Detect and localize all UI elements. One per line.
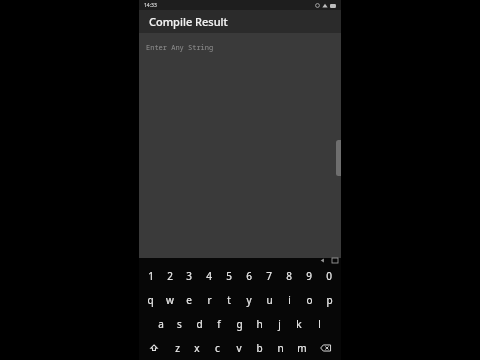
staticText: t [227, 293, 231, 307]
button[interactable]: 0 [319, 263, 339, 288]
staticText: g [236, 317, 243, 331]
staticText: 14:33 [144, 2, 157, 9]
button[interactable]: 3 [179, 263, 199, 288]
button[interactable]: j [269, 312, 289, 336]
button[interactable]: h [249, 312, 269, 336]
button[interactable]: r [199, 288, 219, 312]
button[interactable]: f [209, 312, 229, 336]
staticText: y [246, 293, 252, 307]
button[interactable]: 8 [279, 263, 299, 288]
button[interactable]: s [170, 312, 189, 336]
button[interactable]: g [229, 312, 249, 336]
staticText: 9 [306, 269, 312, 283]
staticText: 7 [266, 269, 272, 283]
button[interactable]: i [279, 288, 299, 312]
button[interactable]: 1 [141, 263, 160, 288]
button[interactable]: k [289, 312, 309, 336]
button[interactable]: c [207, 336, 228, 360]
button[interactable]: e [179, 288, 199, 312]
staticText: z [175, 341, 180, 355]
staticText: p [326, 293, 333, 307]
staticText: 8 [286, 269, 292, 283]
button[interactable]: m [291, 336, 312, 360]
staticText: w [166, 293, 174, 307]
button[interactable]: t [219, 288, 239, 312]
button[interactable]: 6 [239, 263, 259, 288]
staticText: o [306, 293, 313, 307]
button[interactable]: n [270, 336, 291, 360]
staticText: l [318, 317, 321, 331]
button[interactable]: w [160, 288, 179, 312]
staticText: b [256, 341, 263, 355]
staticText: 2 [167, 269, 173, 283]
staticText: s [177, 317, 182, 331]
button[interactable]: q [141, 288, 160, 312]
staticText: r [207, 293, 212, 307]
staticText: n [277, 341, 284, 355]
staticText: 0 [326, 269, 332, 283]
staticText: 3 [186, 269, 192, 283]
button[interactable]: 7 [259, 263, 279, 288]
staticText: h [256, 317, 263, 331]
staticText: j [278, 317, 281, 331]
button[interactable]: p [319, 288, 339, 312]
staticText: 4 [206, 269, 212, 283]
button[interactable]: v [228, 336, 249, 360]
staticText: v [236, 341, 242, 355]
button[interactable]: d [189, 312, 209, 336]
staticText: 5 [226, 269, 232, 283]
button[interactable]: Compile Result [139, 10, 341, 33]
button[interactable]: Backspace [312, 336, 339, 360]
staticText: k [296, 317, 302, 331]
staticText: d [196, 317, 203, 331]
button[interactable]: Shift [141, 336, 167, 360]
staticText: f [217, 317, 221, 331]
button[interactable]: z [167, 336, 187, 360]
button[interactable]: l [309, 312, 329, 336]
button[interactable]: b [249, 336, 270, 360]
button[interactable]: Undo [320, 258, 327, 263]
button[interactable]: 2 [160, 263, 179, 288]
staticText: m [297, 341, 307, 355]
staticText: e [186, 293, 192, 307]
button[interactable]: 4 [199, 263, 219, 288]
button[interactable]: 5 [219, 263, 239, 288]
staticText: u [266, 293, 273, 307]
staticText: i [288, 293, 291, 307]
button[interactable]: 9 [299, 263, 319, 288]
staticText: 1 [148, 269, 154, 283]
staticText: c [215, 341, 220, 355]
staticText: Compile Result [149, 14, 228, 29]
staticText: q [147, 293, 154, 307]
button[interactable]: u [259, 288, 279, 312]
button[interactable]: x [187, 336, 207, 360]
staticText: a [158, 317, 164, 331]
button[interactable]: a [151, 312, 170, 336]
staticText: 6 [246, 269, 252, 283]
staticText: Enter Any String [146, 43, 214, 53]
button[interactable]: o [299, 288, 319, 312]
staticText: x [194, 341, 200, 355]
button[interactable]: Keyboard settings [332, 258, 338, 263]
button[interactable]: y [239, 288, 259, 312]
